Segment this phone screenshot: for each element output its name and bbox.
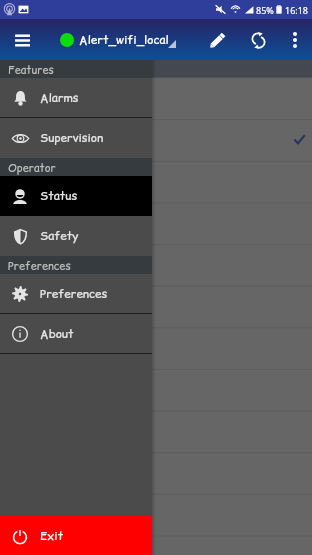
staticText: Preferences — [8, 258, 71, 273]
staticText: About — [40, 326, 74, 342]
staticText: Features — [8, 62, 54, 77]
staticText: 85% — [256, 4, 274, 16]
button[interactable]: Preferences — [0, 274, 152, 314]
staticText: Exit — [40, 528, 64, 544]
button[interactable]: About — [0, 314, 152, 354]
staticText: Safety — [40, 228, 79, 244]
staticText: Operator — [8, 160, 56, 175]
staticText: Alert_wifi_local — [79, 32, 169, 48]
button[interactable]: Supervision — [0, 118, 152, 158]
staticText: Preferences — [40, 286, 108, 302]
button[interactable]: Alarms — [0, 78, 152, 118]
staticText: 16:18 — [285, 4, 309, 16]
button[interactable]: Status — [0, 176, 152, 216]
button[interactable]: Exit — [0, 516, 152, 555]
staticText: Status — [40, 188, 78, 204]
button[interactable]: Safety — [0, 216, 152, 256]
button[interactable]: Edit — [204, 26, 232, 54]
button[interactable]: Refresh — [244, 26, 272, 54]
button[interactable]: Open navigation drawer — [12, 30, 32, 50]
staticText: Supervision — [40, 130, 104, 146]
staticText: Alarms — [40, 90, 79, 106]
button[interactable]: More options — [281, 26, 309, 54]
